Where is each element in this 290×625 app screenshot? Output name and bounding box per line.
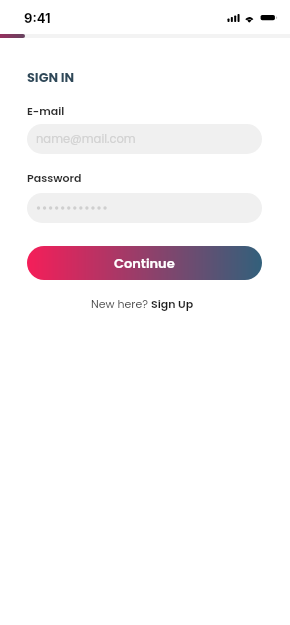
staticText: SIGN IN bbox=[27, 69, 75, 87]
staticText: Continue bbox=[114, 254, 175, 272]
button[interactable] bbox=[27, 193, 262, 223]
button[interactable]: Continue bbox=[27, 246, 262, 280]
staticText: 9:41 bbox=[24, 10, 51, 26]
staticText: Password bbox=[27, 170, 82, 185]
button[interactable]: Sign Up bbox=[151, 296, 194, 311]
staticText: E-mail bbox=[27, 103, 65, 118]
other: Cellular signal bbox=[0, 0, 290, 33]
staticText: New here? bbox=[91, 296, 151, 311]
staticText: Sign Up bbox=[151, 296, 194, 311]
button[interactable]: name@mail.com bbox=[27, 124, 262, 154]
staticText: name@mail.com bbox=[36, 131, 136, 147]
